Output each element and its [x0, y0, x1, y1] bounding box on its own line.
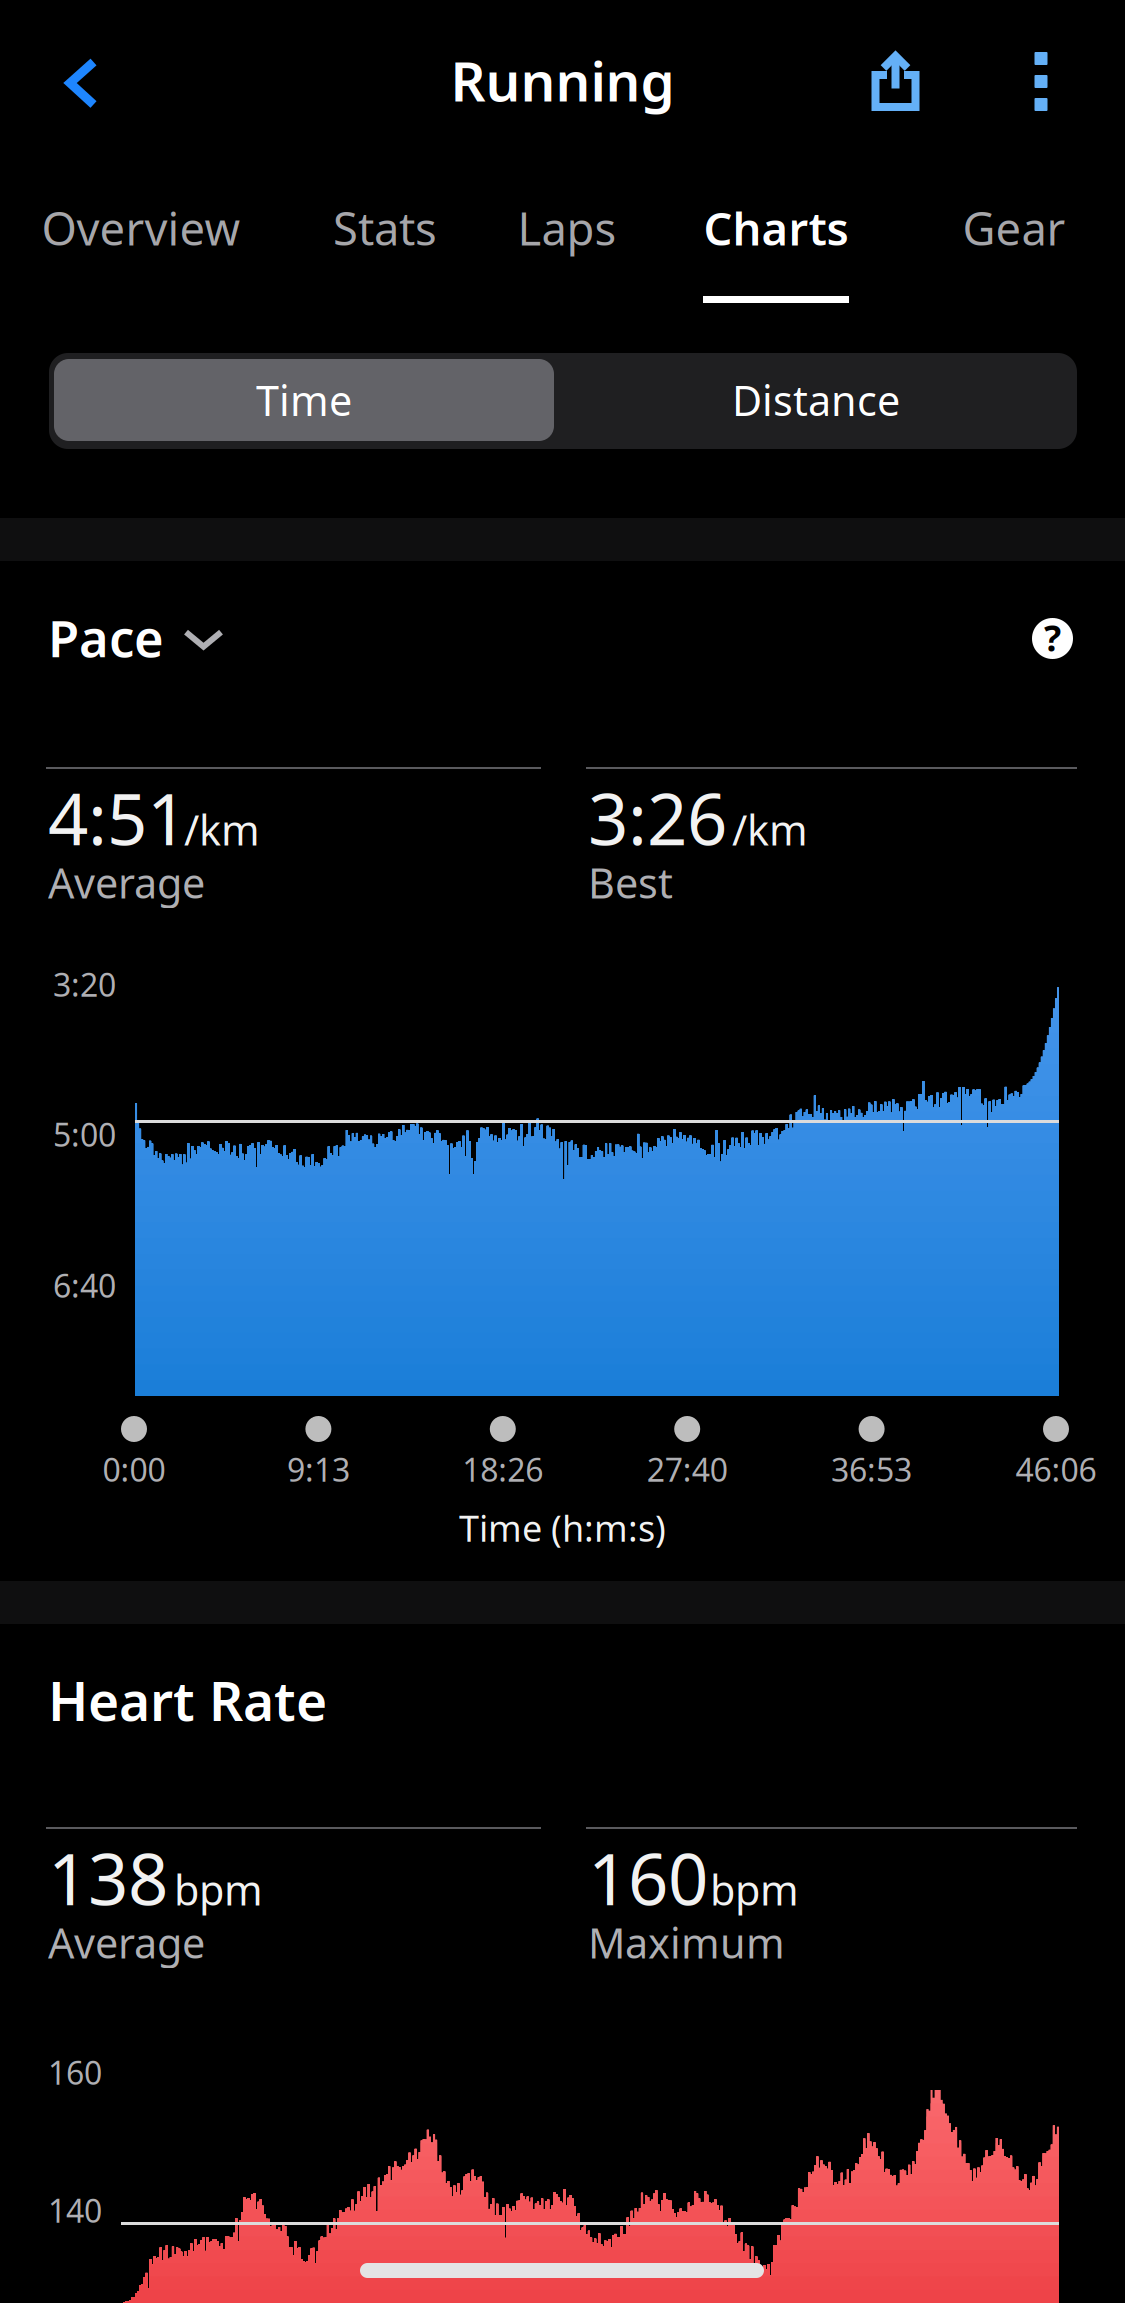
- staticText: 160: [48, 2051, 102, 2093]
- staticText: ?: [1044, 614, 1061, 661]
- button[interactable]: Laps: [417, 202, 717, 303]
- button[interactable]: Stats: [235, 202, 535, 303]
- staticText: Laps: [517, 198, 616, 258]
- staticText: 6:40: [53, 1264, 116, 1306]
- button[interactable]: Share: [845, 29, 947, 134]
- staticText: 18:26: [462, 1448, 543, 1490]
- staticText: Time: [256, 373, 352, 427]
- staticText: Charts: [703, 198, 848, 258]
- staticText: Heart Rate: [48, 1665, 327, 1736]
- staticText: 3:26: [588, 771, 727, 865]
- staticText: Distance: [732, 373, 900, 427]
- staticText: Running: [450, 44, 674, 117]
- button[interactable]: Charts: [626, 202, 926, 303]
- staticText: 0:00: [102, 1448, 165, 1490]
- staticText: Average: [48, 1915, 205, 1970]
- staticText: Average: [48, 855, 205, 910]
- staticText: 5:00: [53, 1113, 116, 1155]
- staticText: Stats: [333, 198, 437, 258]
- button[interactable]: Back: [42, 31, 122, 136]
- button[interactable]: Time: [54, 359, 554, 441]
- staticText: Overview: [41, 198, 240, 258]
- staticText: Pace: [48, 604, 164, 671]
- staticText: 3:20: [53, 963, 116, 1005]
- staticText: 138: [48, 1831, 168, 1925]
- button[interactable]: Gear: [864, 202, 1125, 303]
- staticText: Time (h:m:s): [459, 1504, 666, 1552]
- button[interactable]: More options: [991, 29, 1091, 134]
- staticText: bpm: [174, 1862, 263, 1917]
- staticText: /km: [184, 802, 260, 857]
- staticText: 36:53: [831, 1448, 912, 1490]
- staticText: 27:40: [647, 1448, 728, 1490]
- staticText: 46:06: [1015, 1448, 1096, 1490]
- button[interactable]: Help: [1032, 618, 1073, 659]
- button[interactable]: Distance: [560, 359, 1072, 441]
- staticText: 140: [48, 2189, 102, 2231]
- staticText: Best: [588, 855, 673, 910]
- button[interactable]: Overview: [0, 202, 291, 303]
- button[interactable]: Pace: [48, 604, 224, 671]
- staticText: 4:51: [48, 771, 187, 865]
- staticText: 9:13: [287, 1448, 350, 1490]
- staticText: Maximum: [588, 1915, 785, 1970]
- staticText: Gear: [962, 198, 1065, 258]
- staticText: /km: [732, 802, 808, 857]
- staticText: bpm: [710, 1862, 799, 1917]
- staticText: 160: [588, 1831, 708, 1925]
